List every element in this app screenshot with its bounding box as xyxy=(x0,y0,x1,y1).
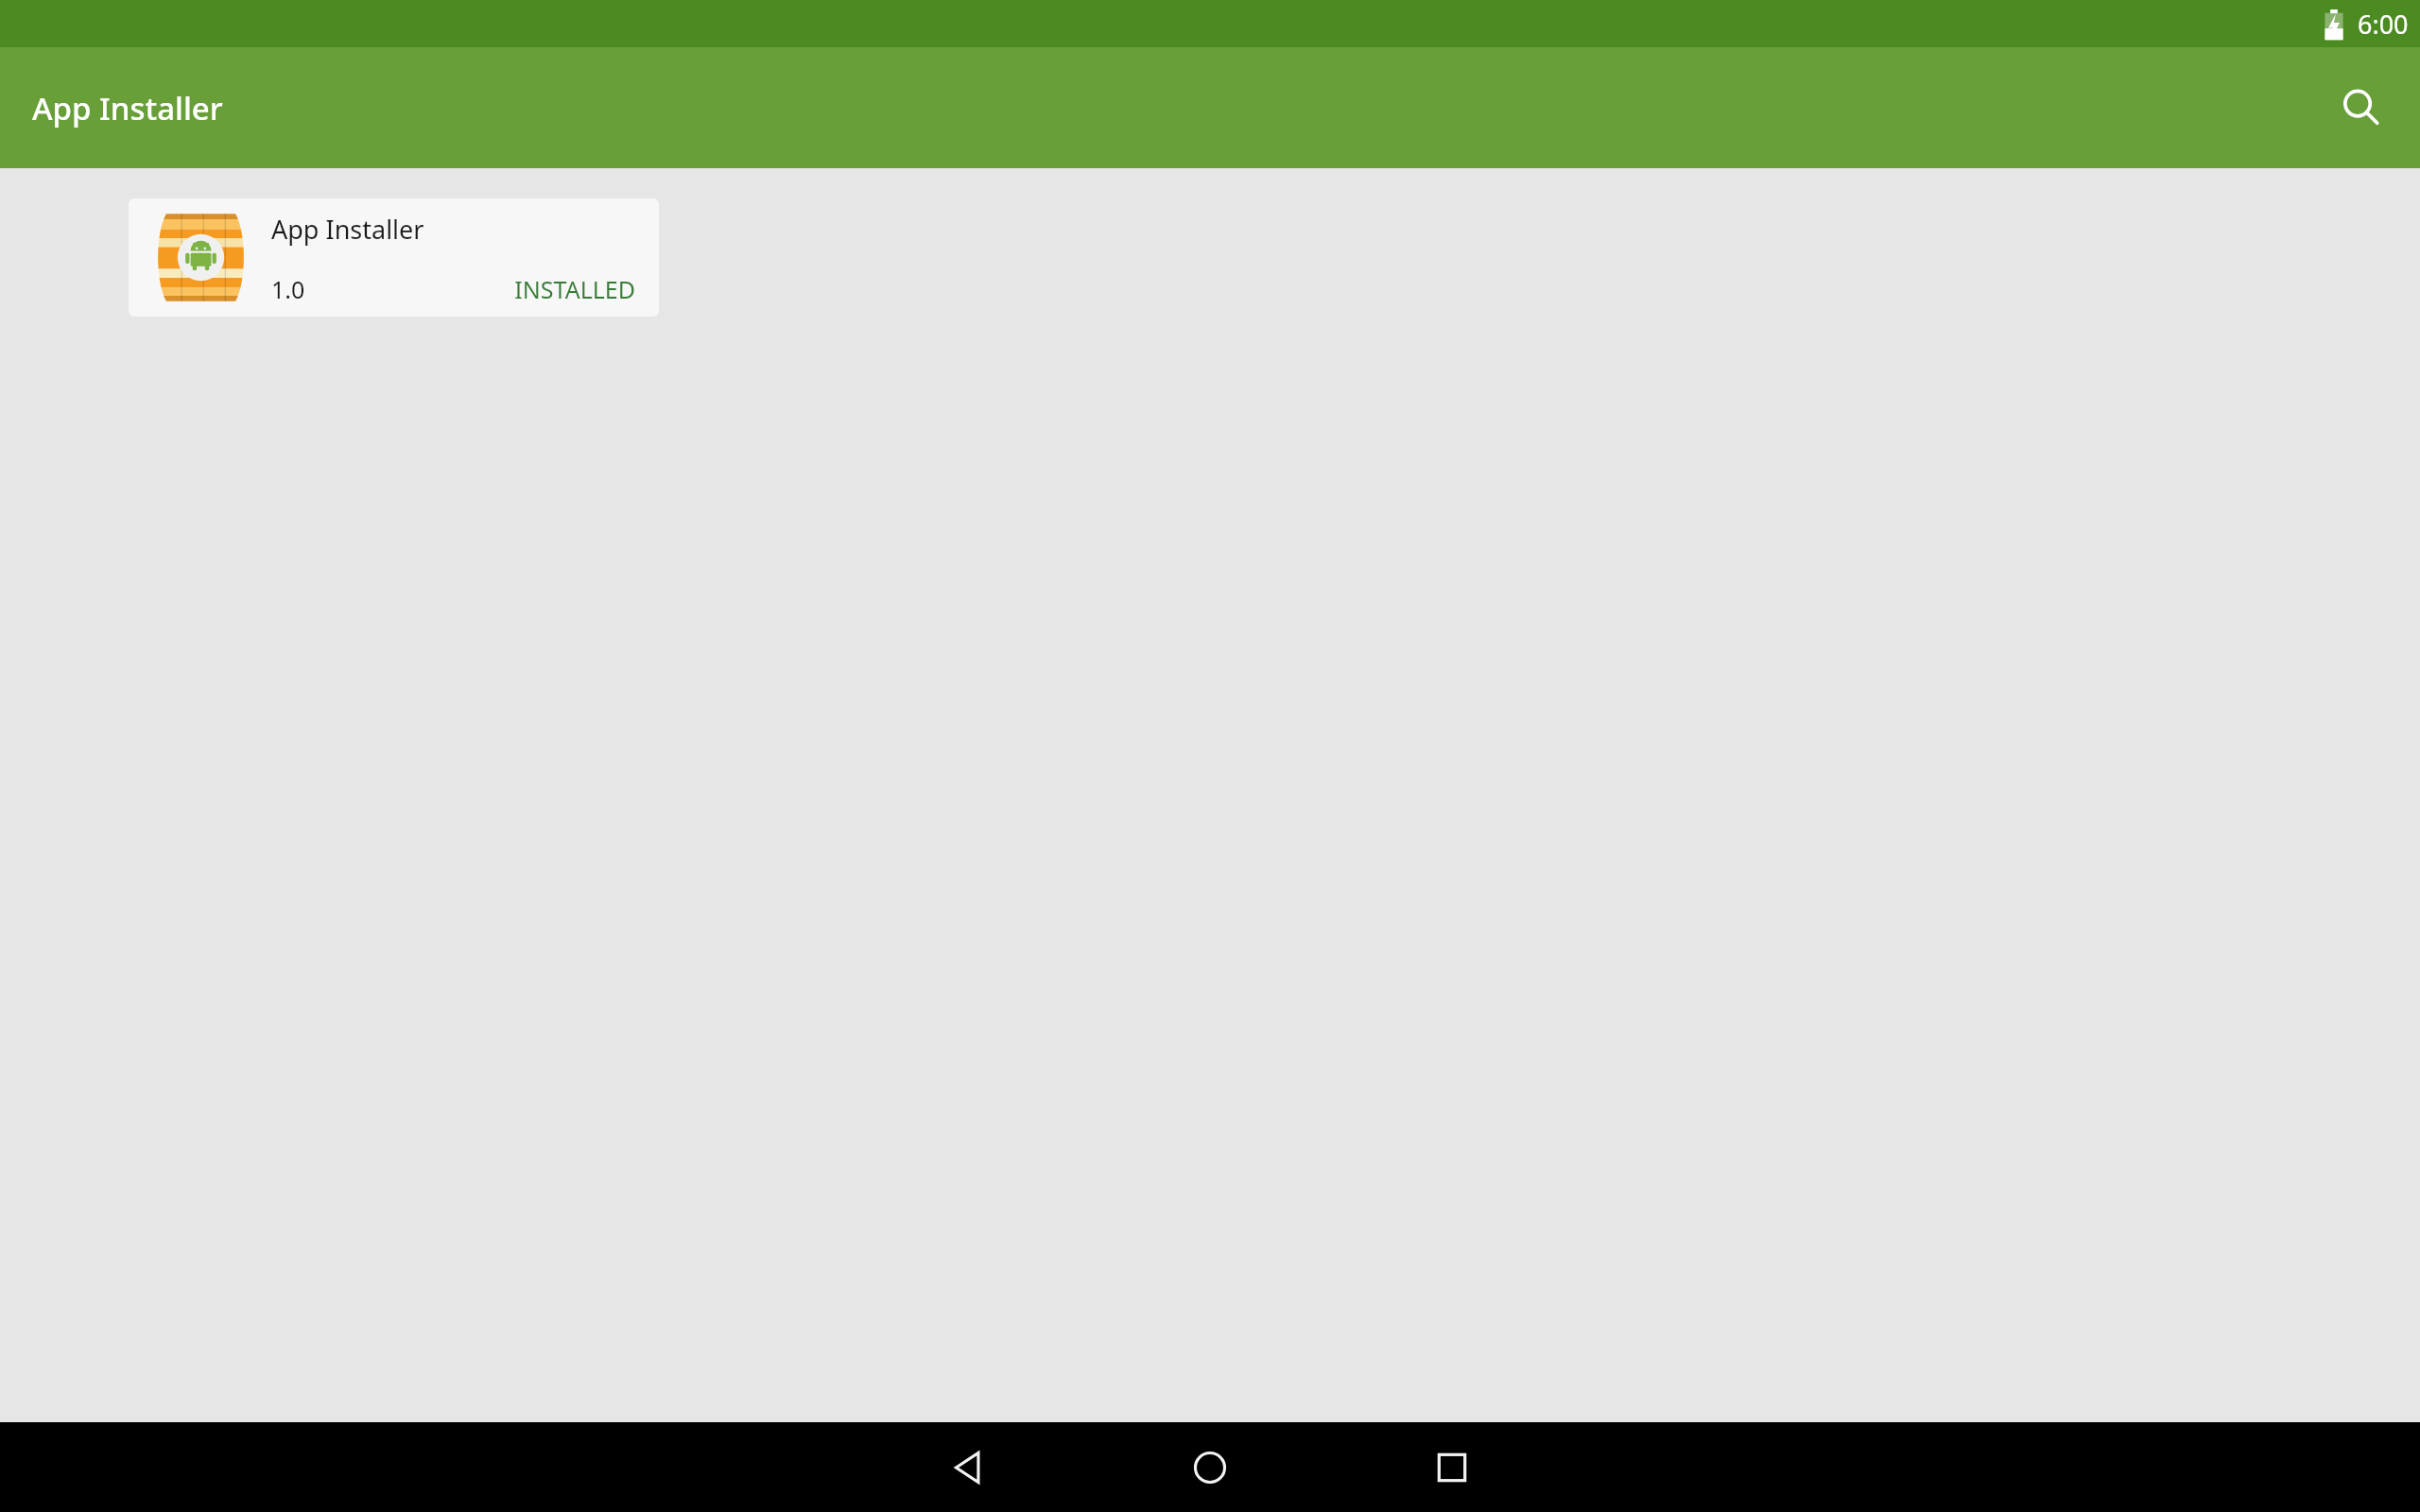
staticText: 6:00 xyxy=(2358,7,2409,42)
button[interactable]: Home xyxy=(1089,1422,1331,1512)
button[interactable]: Search xyxy=(2324,70,2399,146)
button[interactable]: Back xyxy=(847,1422,1089,1512)
button[interactable]: Recents xyxy=(1331,1422,1573,1512)
staticText: App Installer xyxy=(32,87,223,129)
button[interactable]: App Installer xyxy=(129,198,659,317)
staticText: INSTALLED xyxy=(514,273,635,305)
staticText: App Installer xyxy=(271,212,424,247)
staticText: 1.0 xyxy=(271,273,305,305)
